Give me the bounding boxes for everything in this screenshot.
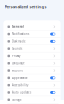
staticText: Privacy (12, 54, 20, 58)
button[interactable]: Notifications (3, 30, 61, 38)
staticText: Account (12, 69, 23, 72)
staticText: Auto updates (12, 91, 31, 94)
staticText: Sounds (12, 47, 22, 50)
button[interactable]: Auto updates (3, 89, 61, 96)
staticText: Language (12, 61, 25, 65)
button[interactable]: Privacy (3, 52, 61, 60)
staticText: Appearance (12, 76, 28, 80)
button[interactable]: Account (3, 67, 61, 74)
button[interactable]: Appearance (3, 74, 61, 81)
staticText: General (12, 25, 24, 28)
button[interactable]: Accessibility (3, 81, 61, 89)
button[interactable]: Storage (3, 96, 61, 103)
button[interactable]: Dark mode (3, 38, 61, 45)
button[interactable]: Language (3, 60, 61, 67)
staticText: Accessibility (12, 83, 28, 87)
staticText: Notifications (12, 32, 29, 36)
staticText: Storage (12, 98, 22, 101)
button[interactable]: General (3, 23, 61, 30)
staticText: Personalized settings (5, 4, 47, 9)
staticText: Dark mode (12, 40, 26, 43)
button[interactable]: Sounds (3, 45, 61, 52)
